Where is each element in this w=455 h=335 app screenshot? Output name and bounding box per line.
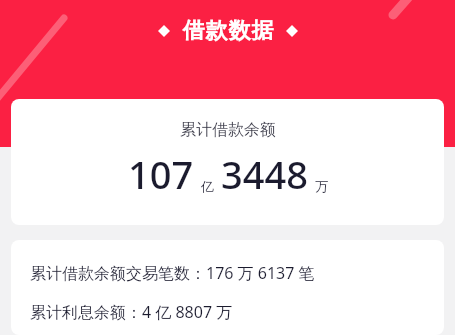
staticText: 累计借款余额 xyxy=(180,120,276,140)
button[interactable]: 借款数据 xyxy=(158,17,298,45)
staticText: 亿 xyxy=(201,178,214,194)
staticText: 累计借款余额交易笔数：176 万 6137 笔 xyxy=(30,262,315,284)
staticText: 借款数据 xyxy=(182,17,274,45)
button[interactable]: 累计借款余额交易笔数：176 万 6137 笔 xyxy=(11,240,444,335)
staticText: 累计利息余额：4 亿 8807 万 xyxy=(30,301,233,323)
staticText: 3448 xyxy=(221,148,308,200)
button[interactable]: 累计借款余额 xyxy=(11,99,444,225)
staticText: 107 xyxy=(128,148,194,200)
staticText: 万 xyxy=(315,178,328,194)
